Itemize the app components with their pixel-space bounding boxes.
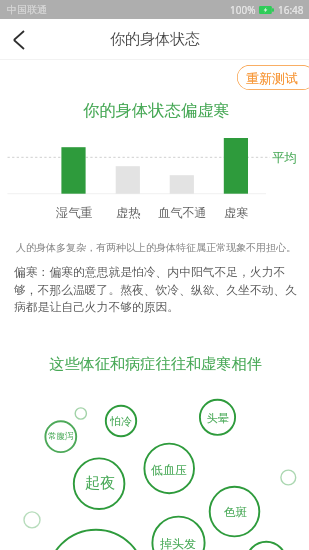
staticText: 湿气重 (56, 205, 93, 220)
staticText: 平均 (272, 150, 297, 166)
button[interactable]: 怕冷 (106, 406, 136, 436)
staticText: 你的身体状态偏虚寒 (2, 100, 309, 121)
staticText: 色斑 (224, 505, 247, 519)
staticText: 血气不通 (158, 205, 207, 220)
button[interactable]: 色斑 (210, 487, 260, 537)
staticText: 掉头发 (160, 536, 196, 550)
staticText: 16:48 (278, 3, 304, 17)
staticText: 虚寒 (224, 205, 249, 220)
button[interactable]: 起夜 (74, 458, 125, 509)
button[interactable]: Back (0, 22, 36, 58)
button[interactable]: 常腹泻 (45, 421, 76, 452)
button[interactable]: 掉头发 (152, 517, 204, 550)
staticText: 中国联通 (7, 3, 47, 16)
staticText: 这些体征和病症往往和虚寒相伴 (1, 354, 309, 373)
staticText: 头晕 (207, 411, 229, 425)
staticText: 偏寒：偏寒的意思就是怕冷、内中阳气不足，火力不够，不那么温暖了。熬夜、饮冷、纵欲… (14, 265, 298, 314)
button[interactable]: 头晕 (200, 400, 235, 435)
staticText: 虚热 (116, 205, 141, 220)
staticText: 100% (230, 3, 256, 17)
staticText: 怕冷 (110, 414, 132, 428)
staticText: 重新测试 (246, 70, 298, 86)
staticText: 低血压 (151, 462, 187, 477)
button[interactable]: 低血压 (144, 444, 194, 494)
staticText: 常腹泻 (48, 431, 74, 442)
staticText: 起夜 (85, 474, 115, 493)
staticText: 你的身体状态 (110, 30, 200, 49)
button[interactable]: 重新测试 (237, 65, 309, 90)
staticText: 人的身体多复杂，有两种以上的身体特征属正常现象不用担心。 (16, 241, 296, 254)
